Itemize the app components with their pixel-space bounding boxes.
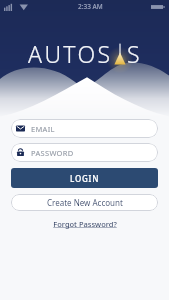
staticText: S xyxy=(127,38,142,69)
other: Email xyxy=(16,124,25,133)
button[interactable]: Password xyxy=(11,143,158,162)
button[interactable]: Forgot Password? xyxy=(49,218,121,230)
button[interactable]: Email xyxy=(11,119,158,138)
other: Password xyxy=(16,148,25,157)
staticText: LOGIN xyxy=(70,173,100,184)
staticText: Create New Account xyxy=(47,197,123,208)
staticText: EMAIL xyxy=(31,124,55,134)
staticText: PASSWORD xyxy=(31,148,74,158)
button[interactable]: LOGIN xyxy=(11,168,158,188)
button[interactable]: Create New Account xyxy=(11,194,158,211)
staticText: 2:33 AM xyxy=(78,2,103,11)
staticText: Forgot Password? xyxy=(53,219,117,229)
staticText: AUTOS xyxy=(28,38,113,69)
